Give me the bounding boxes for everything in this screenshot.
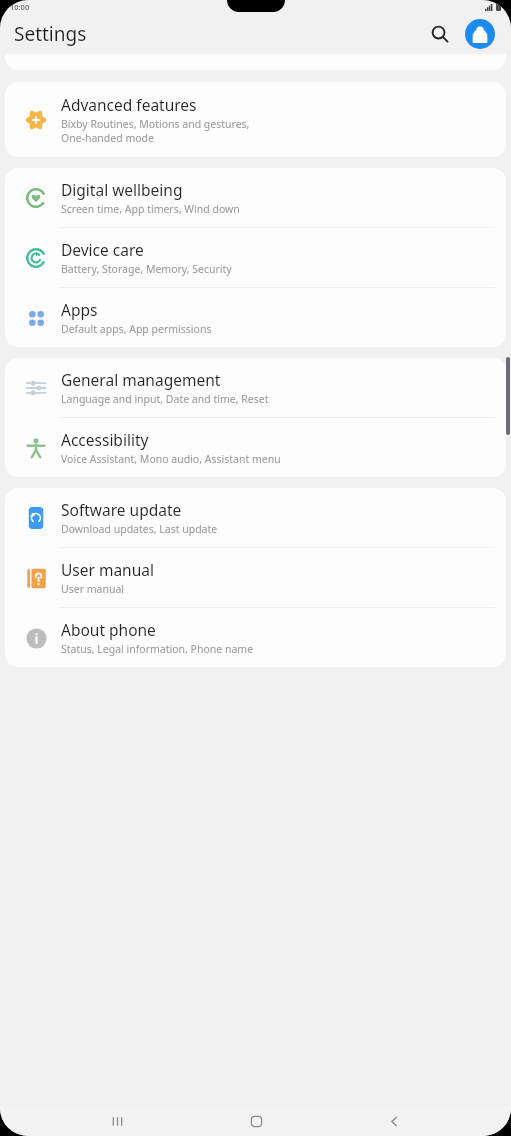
button[interactable]: Home xyxy=(234,1106,278,1136)
staticText: Status, Legal information, Phone name xyxy=(61,642,254,656)
button[interactable]: General management xyxy=(5,358,506,417)
button[interactable]: User manual xyxy=(5,548,506,607)
button[interactable]: Digital wellbeing xyxy=(5,168,506,227)
staticText: About phone xyxy=(61,619,156,640)
button[interactable]: Back xyxy=(372,1106,416,1136)
staticText: Voice Assistant, Mono audio, Assistant m… xyxy=(61,452,281,466)
staticText: Apps xyxy=(61,299,98,320)
staticText: Battery, Storage, Memory, Security xyxy=(61,262,232,276)
button[interactable]: Recents xyxy=(95,1106,139,1136)
button[interactable]: Account xyxy=(463,17,497,51)
staticText: Advanced features xyxy=(61,94,197,115)
staticText: Default apps, App permissions xyxy=(61,322,212,336)
button[interactable]: Search xyxy=(423,17,457,51)
staticText: User manual xyxy=(61,582,124,596)
staticText: Language and input, Date and time, Reset xyxy=(61,392,269,406)
staticText: Accessibility xyxy=(61,429,149,450)
staticText: User manual xyxy=(61,559,154,580)
staticText: General management xyxy=(61,369,221,390)
button[interactable]: About phone xyxy=(5,608,506,667)
button[interactable]: Device care xyxy=(5,228,506,287)
staticText: Screen time, App timers, Wind down xyxy=(61,202,240,216)
button[interactable]: Advanced features xyxy=(5,82,506,157)
staticText: Bixby Routines, Motions and gestures, On… xyxy=(61,117,250,145)
staticText: Software update xyxy=(61,499,182,520)
staticText: Download updates, Last update xyxy=(61,522,218,536)
staticText: 10:00 xyxy=(10,2,30,12)
staticText: Device care xyxy=(61,239,144,260)
button[interactable]: Apps xyxy=(5,288,506,347)
button[interactable]: Software update xyxy=(5,488,506,547)
staticText: Settings xyxy=(14,21,87,47)
button[interactable]: Accessibility xyxy=(5,418,506,477)
staticText: Digital wellbeing xyxy=(61,179,183,200)
